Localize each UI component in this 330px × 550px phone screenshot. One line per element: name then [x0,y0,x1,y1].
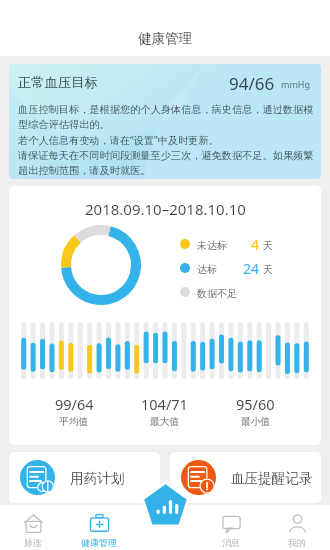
staticText: 最大值 [150,416,180,428]
button[interactable]: 测量血压 [140,481,191,532]
staticText: 数据不足 [197,287,237,300]
button[interactable]: 脉连 [0,505,66,550]
staticText: 天 [263,263,273,276]
staticText: 正常血压目标 [18,74,98,91]
staticText: mmHg [281,78,311,90]
staticText: 最小值 [241,416,271,428]
staticText: 用药计划 [70,470,125,487]
staticText: 95/60 [236,394,275,414]
staticText: 94/66 [229,72,275,95]
staticText: 血压控制目标，是根据您的个人身体信息，病史信息，通过数据模型综合评估得出的。 若… [18,103,315,178]
staticText: 脉连 [24,537,42,548]
staticText: 平均值 [59,416,89,428]
staticText: 天 [263,239,273,252]
staticText: 达标 [197,263,217,276]
staticText: 24 [243,259,260,278]
staticText: 2018.09.10–2018.10.10 [85,199,246,219]
staticText: 未达标 [197,239,227,252]
button[interactable]: 消息 [198,505,264,550]
staticText: 消息 [222,537,240,548]
staticText: 健康管理 [81,537,117,548]
staticText: 健康管理 [138,30,192,47]
staticText: 4 [251,235,260,254]
button[interactable]: 我的 [264,505,330,550]
staticText: 99/64 [55,394,94,414]
button[interactable]: 健康管理 [66,505,132,550]
staticText: 104/71 [141,394,188,414]
button[interactable]: 用药计划 [9,452,160,503]
staticText: 血压提醒记录 [231,470,313,487]
button[interactable]: 血压提醒记录 [170,452,321,503]
staticText: 我的 [288,537,306,548]
